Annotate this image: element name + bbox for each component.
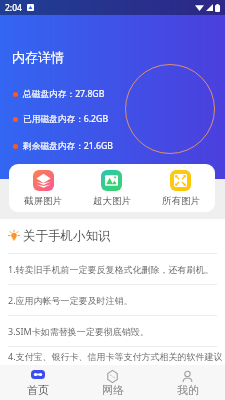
button[interactable]: 4.支付宝、银行卡、信用卡等支付方式相关的软件建议 [0,347,225,365]
button[interactable]: 我的 [150,365,225,400]
staticText: 截屏图片 [24,195,62,207]
button[interactable]: 首页 [0,365,75,400]
staticText: 1.转卖旧手机前一定要反复格式化删除，还有刷机。 [8,263,214,275]
staticText: 首页 [27,383,49,397]
staticText: 2.应用内帐号一定要及时注销。 [8,294,133,306]
staticText: 所有图片 [162,195,200,207]
button[interactable]: 3.SIM卡如需替换一定要彻底销毁。 [0,316,225,346]
staticText: 我的 [177,383,199,397]
staticText: 内存详情 [12,49,64,65]
button[interactable]: 截屏图片 [9,164,77,212]
button[interactable]: 1.转卖旧手机前一定要反复格式化删除，还有刷机。 [0,254,225,284]
staticText: 关于手机小知识 [23,228,111,244]
staticText: 网络 [102,383,124,397]
staticText: 超大图片 [93,195,131,207]
staticText: 4.支付宝、银行卡、信用卡等支付方式相关的软件建议 [8,350,223,362]
staticText: 剩余磁盘内存：21.6GB [23,140,114,152]
staticText: 总磁盘内存：27.8GB [23,88,105,100]
staticText: 已用磁盘内存：6.2GB [23,113,109,125]
button[interactable]: 2.应用内帐号一定要及时注销。 [0,285,225,315]
button[interactable]: 所有图片 [146,164,215,212]
button[interactable]: 网络 [75,365,150,400]
staticText: 3.SIM卡如需替换一定要彻底销毁。 [8,325,149,337]
button[interactable]: 超大图片 [77,164,146,212]
staticText: 2:04 [5,2,22,14]
